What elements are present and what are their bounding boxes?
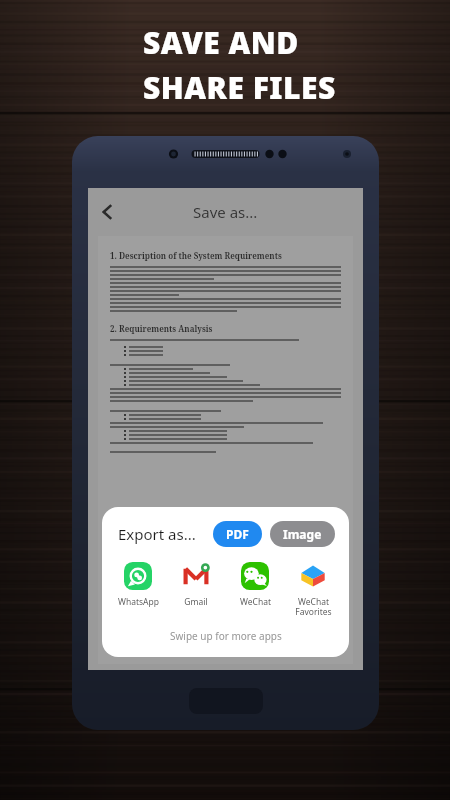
button[interactable]: Gmail bbox=[167, 559, 225, 610]
button[interactable]: Back bbox=[88, 192, 128, 232]
staticText: WeChat bbox=[240, 596, 271, 608]
button[interactable]: WeChat bbox=[226, 559, 284, 610]
staticText: 1. Description of the System Requirement… bbox=[110, 250, 282, 261]
button[interactable]: WeChat Favorites bbox=[284, 559, 342, 619]
staticText: Save as... bbox=[193, 202, 258, 222]
staticText: PDF bbox=[226, 526, 249, 542]
staticText: Gmail bbox=[184, 596, 208, 608]
staticText: Image bbox=[283, 526, 322, 542]
staticText: Export as... bbox=[118, 524, 196, 544]
button[interactable]: Image bbox=[270, 521, 335, 547]
staticText: WeChat Favorites bbox=[295, 596, 332, 617]
staticText: SHARE FILES bbox=[143, 67, 336, 108]
staticText: WhatsApp bbox=[118, 596, 159, 608]
staticText: Swipe up for more apps bbox=[170, 629, 282, 643]
button[interactable]: PDF bbox=[213, 521, 262, 547]
staticText: SAVE AND bbox=[143, 22, 299, 63]
button[interactable]: WhatsApp bbox=[109, 559, 167, 610]
staticText: 2. Requirements Analysis bbox=[110, 323, 213, 334]
